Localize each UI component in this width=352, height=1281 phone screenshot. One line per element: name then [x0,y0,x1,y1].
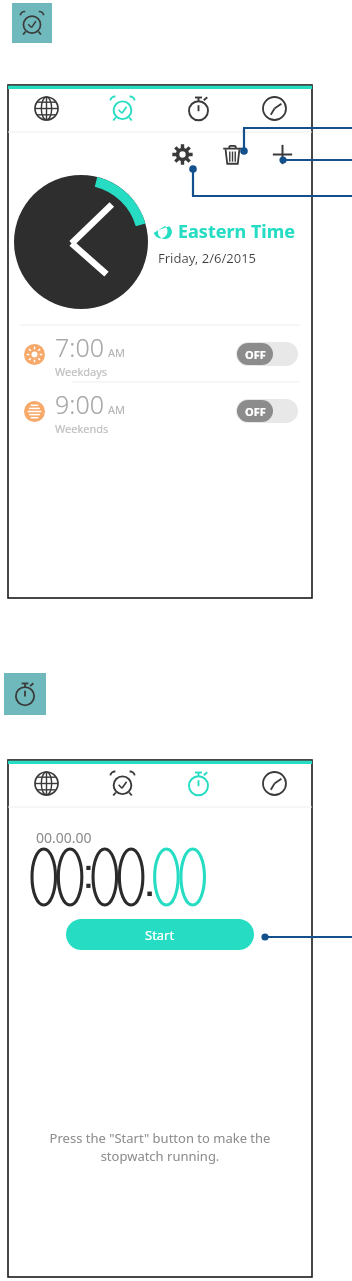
button[interactable]: Start [66,919,254,950]
button[interactable]: Timer [236,760,312,807]
button[interactable]: Add alarm [266,138,298,170]
button[interactable]: World clock [8,760,84,807]
staticText: Weekdays [55,364,108,379]
staticText: Start [145,926,175,944]
button[interactable]: Alarm [12,3,52,43]
staticText: 9:00 [55,387,104,421]
staticText: AM [108,402,126,417]
staticText: OFF [245,404,266,419]
staticText: AM [108,345,126,360]
button[interactable]: Stopwatch [160,85,236,132]
staticText: 7:00 [55,330,104,364]
button[interactable]: Alarm [84,760,160,807]
staticText: Eastern Time [178,219,295,244]
button[interactable]: Alarm off [236,342,298,366]
button[interactable]: Delete [216,138,248,170]
button[interactable]: Settings [166,138,198,170]
button[interactable]: 9:00 [8,383,312,439]
button[interactable]: 7:00 [8,326,312,382]
staticText: Friday, 2/6/2015 [158,249,257,267]
button[interactable]: World clock [8,85,84,132]
button[interactable]: Stopwatch [4,673,46,715]
staticText: Press the "Start" button to make the sto… [8,1129,312,1165]
button[interactable]: Alarm [84,85,160,132]
button[interactable]: Timer [236,85,312,132]
staticText: OFF [245,347,266,362]
staticText: Weekends [55,421,109,436]
staticText: 00.00.00 [36,828,92,847]
button[interactable]: Alarm off [236,399,298,423]
button[interactable]: Stopwatch [160,760,236,807]
